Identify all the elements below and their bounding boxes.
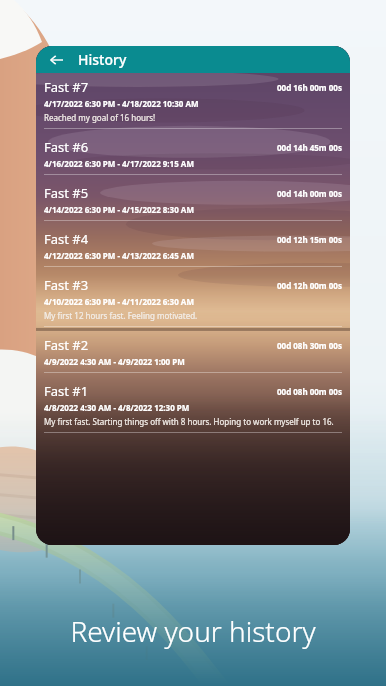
- staticText: 4/17/2022 6:30 PM - 4/18/2022 10:30 AM: [44, 98, 199, 109]
- button[interactable]: Fast #2: [36, 331, 350, 377]
- staticText: 4/14/2022 6:30 PM - 4/15/2022 8:30 AM: [44, 204, 194, 215]
- staticText: Review your history: [70, 612, 316, 650]
- staticText: Fast #2: [44, 336, 89, 354]
- button[interactable]: Fast #4: [36, 225, 350, 271]
- staticText: 4/10/2022 6:30 PM - 4/11/2022 6:30 AM: [44, 296, 194, 307]
- staticText: Fast #4: [44, 230, 89, 248]
- button[interactable]: Fast #3: [36, 271, 350, 331]
- staticText: Reached my goal of 16 hours!: [44, 112, 156, 123]
- staticText: 00d 14h 45m 00s: [277, 142, 342, 153]
- staticText: My first 12 hours fast. Feeling motivate…: [44, 310, 198, 321]
- staticText: 00d 08h 30m 00s: [277, 340, 342, 351]
- button[interactable]: Back: [44, 48, 68, 72]
- staticText: My first fast. Starting things off with …: [44, 416, 334, 427]
- staticText: Fast #3: [44, 276, 89, 294]
- staticText: History: [78, 50, 127, 69]
- button[interactable]: Fast #7: [36, 73, 350, 133]
- staticText: Fast #7: [44, 78, 89, 96]
- staticText: 00d 16h 00m 00s: [277, 82, 342, 93]
- staticText: Fast #1: [44, 382, 89, 400]
- staticText: 00d 12h 15m 00s: [277, 234, 342, 245]
- staticText: 00d 14h 00m 00s: [277, 188, 342, 199]
- staticText: 4/8/2022 4:30 AM - 4/8/2022 12:30 PM: [44, 402, 190, 413]
- staticText: 00d 12h 00m 00s: [277, 280, 342, 291]
- button[interactable]: Fast #6: [36, 133, 350, 179]
- staticText: Fast #5: [44, 184, 89, 202]
- staticText: 4/9/2022 4:30 AM - 4/9/2022 1:00 PM: [44, 356, 185, 367]
- staticText: 4/12/2022 6:30 PM - 4/13/2022 6:45 AM: [44, 250, 194, 261]
- staticText: Fast #6: [44, 138, 89, 156]
- staticText: 00d 08h 00m 00s: [277, 386, 342, 397]
- staticText: 4/16/2022 6:30 PM - 4/17/2022 9:15 AM: [44, 158, 194, 169]
- button[interactable]: Fast #1: [36, 377, 350, 437]
- button[interactable]: Fast #5: [36, 179, 350, 225]
